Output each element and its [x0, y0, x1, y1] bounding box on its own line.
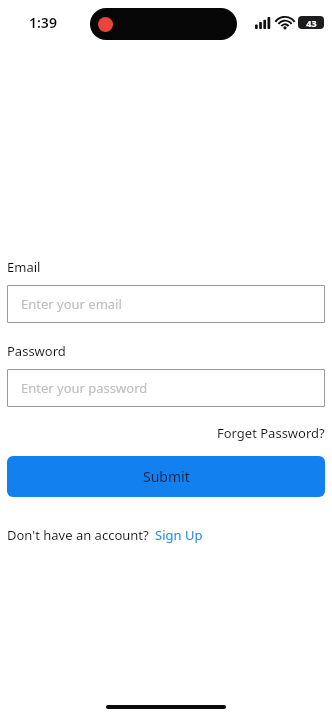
button[interactable]: Forget Password? — [217, 424, 325, 442]
staticText: Enter your email — [21, 295, 122, 313]
staticText: Submit — [143, 467, 190, 486]
button[interactable]: Submit — [7, 456, 325, 497]
staticText: Don't have an account? — [7, 526, 149, 544]
staticText: Sign Up — [155, 526, 203, 544]
staticText: Email — [7, 258, 41, 276]
staticText: Password — [7, 342, 66, 360]
button[interactable]: Enter your email — [7, 285, 325, 323]
button[interactable]: Enter your password — [7, 369, 325, 407]
staticText: 43 — [306, 17, 317, 29]
staticText: 1:39 — [29, 13, 57, 32]
button[interactable]: Sign Up — [155, 526, 203, 544]
staticText: Enter your password — [21, 379, 148, 397]
